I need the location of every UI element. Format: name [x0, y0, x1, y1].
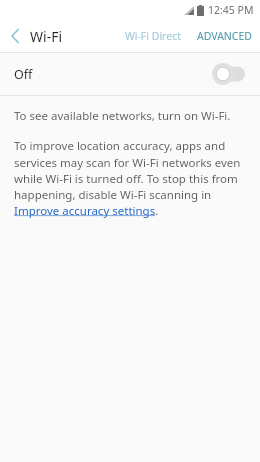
- staticText: 12:45 PM: [208, 3, 254, 17]
- staticText: Wi-Fi: [30, 27, 63, 46]
- staticText: Off: [14, 66, 33, 83]
- button[interactable]: Off: [0, 53, 260, 95]
- staticText: Wi-Fi Direct: [125, 29, 181, 43]
- button[interactable]: To improve location accuracy, apps and s…: [14, 138, 246, 218]
- button[interactable]: ADVANCED: [191, 23, 260, 49]
- staticText: To see available networks, turn on Wi-Fi…: [14, 108, 231, 124]
- staticText: To improve location accuracy, apps and s…: [14, 138, 246, 218]
- other: Wi-Fi toggle, off: [208, 61, 248, 87]
- button[interactable]: Navigate up: [0, 20, 30, 52]
- staticText: ADVANCED: [197, 29, 252, 43]
- button[interactable]: Wi-Fi Direct: [119, 23, 187, 49]
